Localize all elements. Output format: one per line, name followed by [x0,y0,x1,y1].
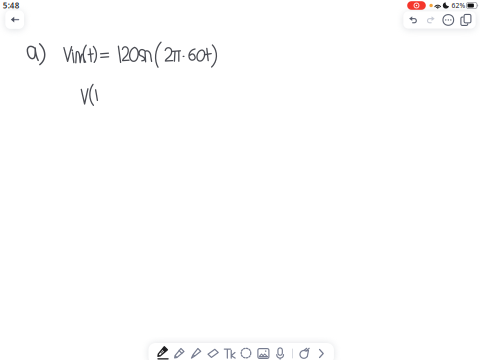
button[interactable]: Ruler [222,344,238,360]
button[interactable]: Pencil [171,344,188,360]
button[interactable]: Undo [404,11,422,29]
staticText: 5:48 [3,0,20,11]
button[interactable]: Insert image [255,344,272,360]
staticText: 62% [451,1,465,10]
button[interactable]: Back [5,10,24,29]
button[interactable]: More options [439,11,457,29]
button[interactable]: Pen [155,344,171,360]
button[interactable]: Pages [457,11,475,29]
button[interactable]: Highlighter [188,344,205,360]
button[interactable]: Eraser [205,344,221,360]
button[interactable]: Ink color [296,344,313,360]
button[interactable]: Record audio [272,344,288,360]
button[interactable]: More tools [313,344,330,360]
button[interactable]: Redo [422,11,439,29]
button[interactable]: Lasso select [238,344,255,360]
